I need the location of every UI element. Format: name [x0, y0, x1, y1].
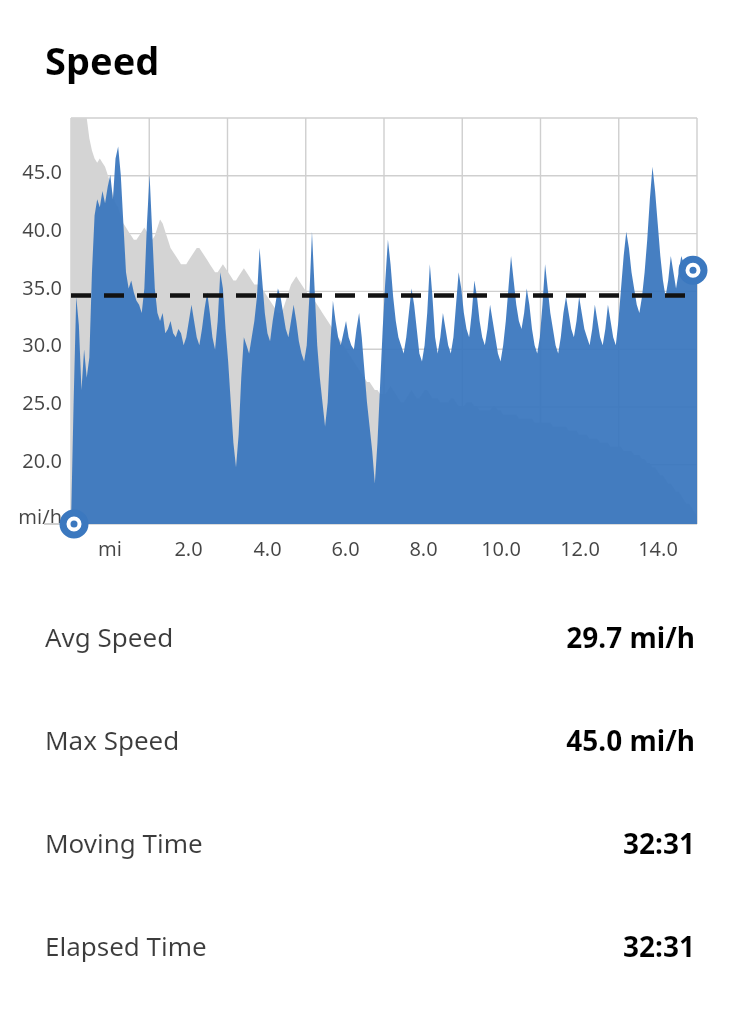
button[interactable]: Elapsed Time — [0, 894, 739, 997]
staticText: Elapsed Time — [45, 928, 207, 963]
staticText: 12.0 — [560, 535, 600, 562]
staticText: mi — [98, 535, 122, 562]
staticText: Max Speed — [45, 722, 180, 757]
staticText: Moving Time — [45, 825, 203, 860]
staticText: 20.0 — [22, 447, 62, 474]
staticText: 6.0 — [331, 535, 360, 562]
button[interactable]: Max Speed — [0, 688, 739, 791]
staticText: 35.0 — [22, 274, 62, 301]
staticText: 32:31 — [623, 824, 695, 862]
staticText: 32:31 — [623, 927, 695, 965]
button[interactable]: Avg Speed — [0, 585, 739, 688]
staticText: 45.0 mi/h — [566, 721, 695, 759]
button[interactable]: Moving Time — [0, 791, 739, 894]
staticText: 4.0 — [253, 535, 282, 562]
staticText: Avg Speed — [45, 619, 174, 654]
staticText: 45.0 — [22, 158, 62, 185]
staticText: 8.0 — [409, 535, 438, 562]
staticText: 14.0 — [638, 535, 678, 562]
staticText: 25.0 — [22, 389, 62, 416]
staticText: 40.0 — [22, 216, 62, 243]
staticText: 2.0 — [174, 535, 203, 562]
staticText: Speed — [45, 34, 160, 86]
staticText: 29.7 mi/h — [566, 618, 695, 656]
staticText: 30.0 — [22, 331, 62, 358]
staticText: mi/h — [18, 503, 62, 530]
staticText: 10.0 — [481, 535, 521, 562]
